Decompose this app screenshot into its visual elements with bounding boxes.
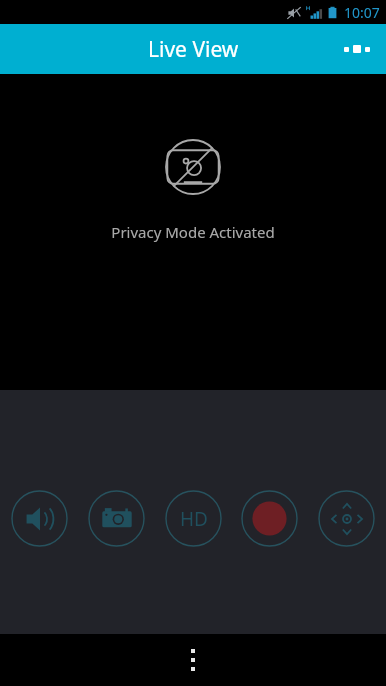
staticText: 10:07 — [344, 3, 380, 22]
staticText: Live View — [148, 35, 239, 64]
button[interactable]: Speaker — [11, 490, 68, 547]
button[interactable]: More options — [328, 31, 386, 67]
staticText: HD — [180, 506, 208, 532]
button[interactable]: HD — [165, 490, 222, 547]
button[interactable]: Pan and tilt — [318, 490, 375, 547]
staticText: Privacy Mode Activated — [111, 222, 275, 242]
button[interactable]: Snapshot — [88, 490, 145, 547]
button[interactable]: Menu — [177, 635, 209, 685]
button[interactable]: Record — [241, 490, 298, 547]
